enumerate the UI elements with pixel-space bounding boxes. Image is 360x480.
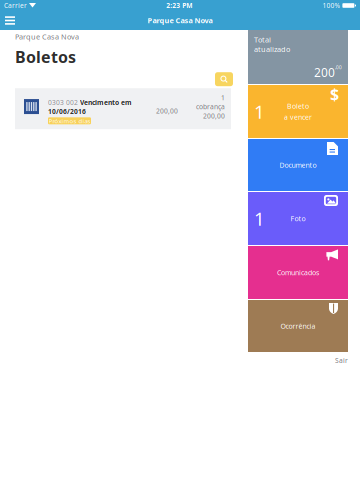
staticText: 1 [221, 93, 225, 102]
staticText: Sair [335, 356, 348, 365]
staticText: 200,00 [203, 111, 225, 120]
staticText: Próximos dias [48, 117, 90, 125]
staticText: $ [330, 84, 339, 104]
button[interactable]: Comunicados [248, 246, 348, 299]
staticText: 1 [254, 99, 265, 124]
staticText: Total [254, 35, 271, 44]
staticText: Carrier [4, 1, 27, 10]
staticText: 0303 002 [48, 98, 80, 107]
staticText: Boleto [287, 101, 309, 110]
button[interactable]: $ [248, 85, 348, 138]
staticText: Comunicados [277, 268, 319, 277]
staticText: 2:23 PM [166, 1, 192, 10]
staticText: Foto [290, 214, 305, 223]
staticText: cobrança [196, 102, 225, 111]
button[interactable]: Foto [248, 192, 348, 245]
staticText: 10/06/2016 [48, 107, 86, 116]
staticText: atualizado [254, 44, 290, 54]
staticText: Vencimento em [80, 98, 132, 107]
staticText: 100% [322, 1, 340, 10]
staticText: 200 [314, 64, 335, 80]
staticText: ,00 [335, 64, 342, 70]
button[interactable]: 0303 002 [15, 88, 231, 129]
staticText: 1 [254, 206, 265, 231]
staticText: Ocorrência [280, 321, 315, 330]
staticText: 200,00 [156, 106, 178, 115]
button[interactable]: Sair [335, 356, 348, 365]
button[interactable]: Ocorrência [248, 300, 348, 352]
button[interactable]: Documento [248, 139, 348, 191]
staticText: Boletos [15, 46, 76, 67]
button[interactable]: Buscar [215, 72, 233, 86]
staticText: Parque Casa Nova [147, 16, 212, 25]
staticText: Documento [279, 160, 316, 169]
staticText: a vencer [284, 112, 312, 121]
button[interactable]: Menu [0, 11, 20, 29]
staticText: Parque Casa Nova [15, 32, 79, 41]
button[interactable]: Total [248, 30, 348, 84]
